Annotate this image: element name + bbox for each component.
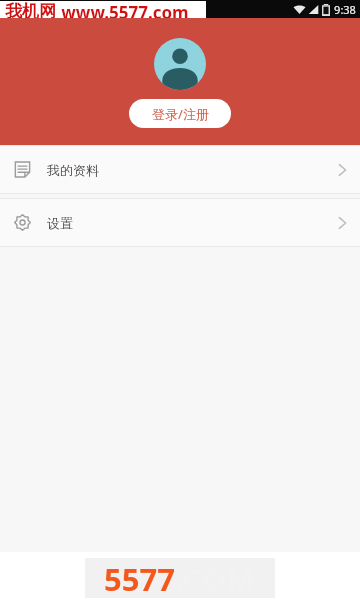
staticText: 我机网 <box>5 1 56 18</box>
staticText: 设置 <box>47 215 73 231</box>
other: Avatar <box>154 38 206 90</box>
staticText: 我的资料 <box>47 162 99 178</box>
button[interactable]: 登录/注册 <box>129 99 231 128</box>
staticText: 9:38 <box>334 2 356 17</box>
button[interactable]: 设置 <box>0 199 360 246</box>
staticText: www.5577.com <box>61 1 189 18</box>
staticText: 登录/注册 <box>152 105 209 123</box>
button[interactable]: 我的资料 <box>0 146 360 193</box>
staticText: 5577 <box>104 558 175 598</box>
